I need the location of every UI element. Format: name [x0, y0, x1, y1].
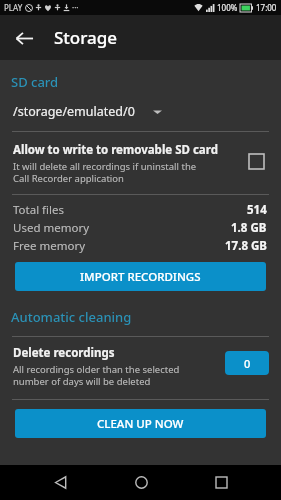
staticText: Used memory [13, 220, 90, 236]
staticText: 1.8 GB [231, 220, 267, 236]
button[interactable]: 0 [225, 351, 269, 375]
staticText: 514 [247, 202, 267, 218]
staticText: /storage/emulated/0 [13, 103, 135, 120]
staticText: 17:00 [256, 2, 277, 13]
staticText: CLEAN UP NOW [97, 416, 184, 432]
staticText: Automatic cleaning [11, 308, 132, 326]
staticText: ··· [72, 2, 79, 13]
staticText: It will delete all recordings if uninsta… [13, 160, 197, 185]
staticText: PLAY [4, 2, 23, 13]
staticText: All recordings older than the selected n… [13, 363, 180, 388]
button[interactable]: /storage/emulated/0 [0, 101, 281, 122]
button[interactable]: CLEAN UP NOW [15, 409, 266, 438]
staticText: Delete recordings [13, 345, 115, 361]
button[interactable]: Back [40, 465, 80, 500]
staticText: Storage [54, 26, 118, 49]
staticText: Free memory [13, 238, 86, 254]
button[interactable]: Back [8, 22, 40, 54]
button[interactable]: Home [121, 465, 161, 500]
staticText: 0 [244, 356, 251, 371]
staticText: 17.8 GB [225, 238, 267, 254]
button[interactable]: Delete recordings [0, 345, 281, 388]
button[interactable]: Allow to write to removable SD card [0, 140, 281, 187]
button[interactable]: Allow to write to removable SD card [243, 148, 269, 174]
button[interactable]: Recent apps [201, 465, 241, 500]
staticText: IMPORT RECORDINGS [80, 269, 201, 285]
staticText: Allow to write to removable SD card [13, 142, 218, 158]
staticText: Total files [13, 202, 64, 218]
staticText: 100% [217, 2, 238, 13]
staticText: SD card [11, 73, 59, 91]
button[interactable]: IMPORT RECORDINGS [15, 262, 266, 291]
